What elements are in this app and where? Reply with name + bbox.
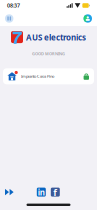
button[interactable]: Profile bbox=[84, 14, 92, 23]
button[interactable]: Menu bbox=[5, 14, 13, 23]
button[interactable]: Next bbox=[5, 189, 14, 195]
staticText: 08:37 bbox=[7, 2, 20, 9]
staticText: f bbox=[53, 186, 57, 198]
staticText: AUS electronics bbox=[26, 32, 86, 43]
button[interactable]: Impianto Casa Pino bbox=[3, 68, 94, 84]
staticText: Impianto Casa Pino bbox=[21, 74, 54, 79]
staticText: GOOD MORNING bbox=[32, 51, 65, 56]
button[interactable]: LinkedIn bbox=[37, 188, 46, 197]
button[interactable]: Facebook bbox=[51, 188, 60, 197]
staticText: in bbox=[38, 187, 45, 198]
